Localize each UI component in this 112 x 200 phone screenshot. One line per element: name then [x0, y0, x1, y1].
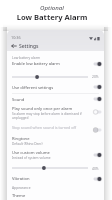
staticText: Use different settings [12, 85, 54, 91]
staticText: Theme [12, 193, 26, 199]
staticText: Sound [12, 97, 25, 103]
staticText: 40% [92, 166, 99, 170]
staticText: Optional [0, 3, 104, 11]
button[interactable] [7, 104, 104, 122]
button[interactable] [7, 175, 104, 184]
button[interactable] [7, 135, 104, 148]
button[interactable]: Toggle off [93, 109, 102, 115]
button[interactable] [7, 95, 104, 104]
button[interactable] [7, 191, 104, 200]
staticText: Ringtone [12, 136, 30, 142]
staticText: Use custom volume [12, 150, 50, 156]
button[interactable]: Toggle on [93, 61, 102, 67]
button[interactable] [7, 124, 104, 133]
button[interactable]: Settings [19, 43, 39, 50]
staticText: Appearance [12, 185, 31, 189]
button[interactable]: Toggle on [93, 152, 102, 158]
button[interactable]: Slider [12, 165, 88, 171]
button[interactable]: Toggle off [93, 127, 102, 133]
button[interactable]: Toggle on [93, 96, 102, 102]
staticText: Vibration [12, 176, 30, 182]
button[interactable]: Toggle on [93, 176, 102, 182]
staticText: Instead of system volume [12, 156, 51, 160]
staticText: 10:36 [11, 35, 21, 40]
button[interactable]: Slider [12, 74, 88, 80]
staticText: So alarm may stop before alarm is dismis… [12, 112, 82, 120]
button[interactable] [7, 60, 104, 69]
staticText: 20% [92, 74, 99, 78]
staticText: Play sound only once per alarm [12, 106, 73, 112]
staticText: Default (Rhino Deer) [12, 142, 43, 146]
staticText: Low battery alarm [12, 55, 41, 59]
staticText: Stop sound when sound is turned off [12, 125, 77, 130]
button[interactable] [7, 149, 104, 162]
staticText: Low Battery Alarm [0, 12, 104, 22]
button[interactable] [7, 83, 104, 92]
button[interactable]: Toggle on [93, 84, 102, 90]
button[interactable]: Back [9, 41, 19, 51]
staticText: Settings [19, 43, 39, 50]
staticText: Enable low battery alarm [12, 61, 60, 67]
